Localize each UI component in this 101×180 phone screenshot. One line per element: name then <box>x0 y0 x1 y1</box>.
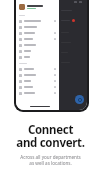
button[interactable] <box>19 78 56 84</box>
button[interactable] <box>19 90 56 96</box>
button[interactable] <box>19 30 56 36</box>
staticText: Connect and convert. <box>16 122 85 150</box>
button[interactable] <box>19 48 56 54</box>
button[interactable] <box>19 24 56 30</box>
button[interactable] <box>19 18 56 24</box>
button[interactable] <box>19 36 56 42</box>
button[interactable] <box>19 3 56 11</box>
button[interactable] <box>19 54 56 60</box>
staticText: Across all your departments as well as l… <box>20 154 81 166</box>
button[interactable] <box>19 42 56 48</box>
button[interactable] <box>19 72 56 78</box>
button[interactable]: Create <box>75 95 84 104</box>
button[interactable] <box>19 84 56 90</box>
button[interactable] <box>19 66 56 72</box>
